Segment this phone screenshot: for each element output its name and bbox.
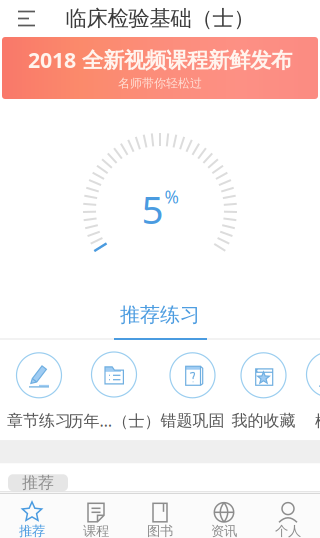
- staticText: 章节练习: [7, 411, 71, 430]
- staticText: 课程: [83, 523, 109, 538]
- button[interactable]: 图书: [128, 494, 192, 538]
- staticText: 图书: [147, 523, 173, 538]
- button[interactable]: 历年…（士）: [71, 352, 157, 431]
- staticText: 模...: [315, 410, 320, 431]
- staticText: 错题巩固: [160, 411, 224, 430]
- button[interactable]: 错题巩固: [157, 353, 228, 430]
- staticText: 2018 全新视频课程新鲜发布: [28, 45, 292, 74]
- staticText: 个人: [275, 523, 301, 538]
- button[interactable]: 章节练习: [7, 353, 71, 430]
- button[interactable]: 个人: [256, 494, 320, 538]
- staticText: 推荐: [19, 523, 45, 538]
- staticText: 临床检验基础（士）: [65, 5, 254, 32]
- staticText: 5: [141, 183, 163, 235]
- button[interactable]: 推荐: [0, 494, 64, 538]
- button[interactable]: 2018 全新视频课程新鲜发布: [0, 37, 320, 99]
- button[interactable]: Menu: [0, 0, 45, 37]
- staticText: 我的收藏: [231, 411, 295, 430]
- button[interactable]: 资讯: [192, 494, 256, 538]
- button[interactable]: 模...: [299, 352, 320, 431]
- staticText: %: [164, 185, 178, 208]
- staticText: 资讯: [211, 523, 237, 538]
- staticText: 推荐练习: [120, 302, 200, 327]
- staticText: 推荐: [22, 473, 54, 493]
- button[interactable]: 我的收藏: [228, 353, 299, 430]
- staticText: 历年…（士）: [67, 410, 160, 431]
- button[interactable]: 课程: [64, 494, 128, 538]
- staticText: 名师带你轻松过: [118, 76, 202, 90]
